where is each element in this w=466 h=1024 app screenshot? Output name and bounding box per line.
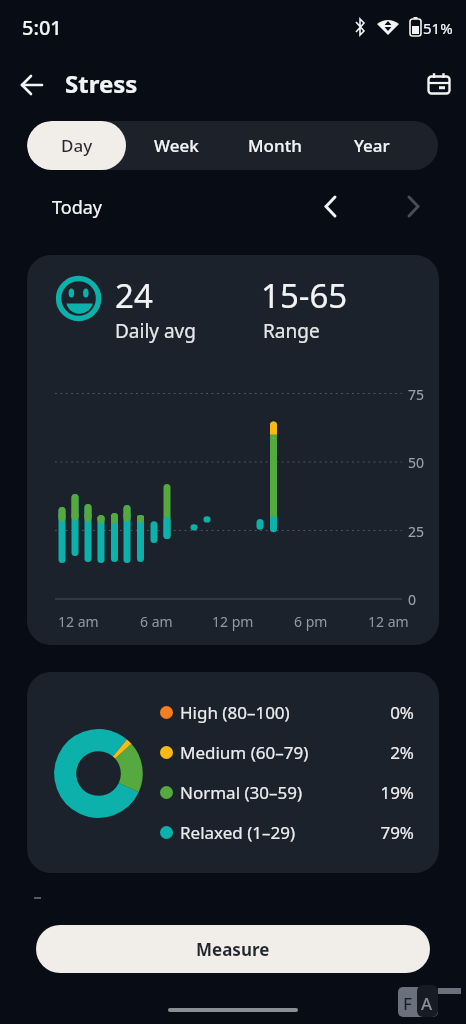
staticText: Week [154,134,199,157]
staticText: Daily avg [115,318,196,344]
staticText: F [403,992,412,1015]
staticText: 0 [408,590,417,609]
staticText: High (80–100) [180,701,290,724]
button[interactable]: Year [324,121,420,170]
staticText: Normal (30–59) [180,781,303,804]
staticText: 25 [408,522,425,541]
staticText: 19% [380,781,414,804]
staticText: 0% [390,701,414,724]
staticText: 15-65 [261,273,348,318]
button[interactable] [421,66,457,102]
button[interactable]: Day [27,121,126,170]
button[interactable]: Measure [36,925,430,973]
staticText: 50 [408,453,425,472]
staticText: Relaxed (1–29) [180,821,296,844]
staticText: 51% [423,18,453,38]
staticText: A [421,992,433,1015]
staticText: 24 [115,273,153,318]
button[interactable] [14,67,50,103]
staticText: Day [61,134,93,157]
staticText: 2% [390,741,414,764]
staticText: Measure [196,938,270,961]
button[interactable]: Month [226,121,324,170]
staticText: Medium (60–79) [180,741,309,764]
staticText: 79% [380,821,414,844]
staticText: 5:01 [22,14,62,41]
button[interactable] [396,191,428,223]
staticText: Range [263,318,320,344]
staticText: 6 am [140,612,173,631]
staticText: Month [248,134,302,157]
staticText: 12 am [58,612,99,631]
staticText: 12 am [368,612,409,631]
button[interactable] [316,191,348,223]
staticText: Stress [65,67,138,100]
staticText: 75 [408,385,425,404]
staticText: 12 pm [212,612,254,631]
staticText: Today [52,195,102,220]
staticText: 6 pm [294,612,328,631]
button[interactable]: Week [126,121,226,170]
staticText: Year [354,134,390,157]
